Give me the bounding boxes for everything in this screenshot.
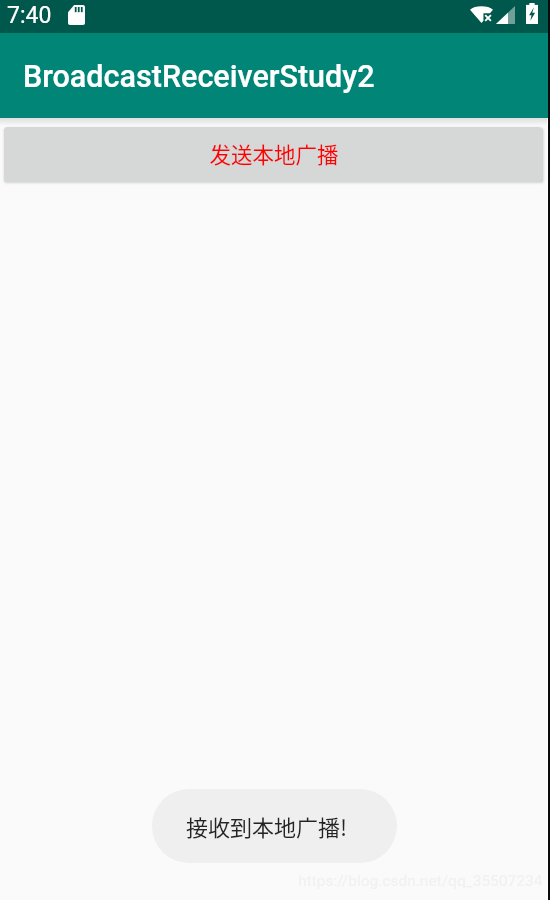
staticText: BroadcastReceiverStudy2 <box>23 59 375 95</box>
staticText: https://blog.csdn.net/qq_35507234 <box>298 872 543 890</box>
staticText: 发送本地广播 <box>209 138 339 169</box>
other: SD card <box>68 5 85 25</box>
staticText: 接收到本地广播! <box>186 810 348 842</box>
other: Mobile signal <box>496 6 515 24</box>
button[interactable]: 发送本地广播 <box>4 127 542 182</box>
other: Battery charging <box>526 3 538 24</box>
staticText: 7:40 <box>7 2 52 29</box>
other: Wi-Fi disconnected <box>470 5 493 23</box>
